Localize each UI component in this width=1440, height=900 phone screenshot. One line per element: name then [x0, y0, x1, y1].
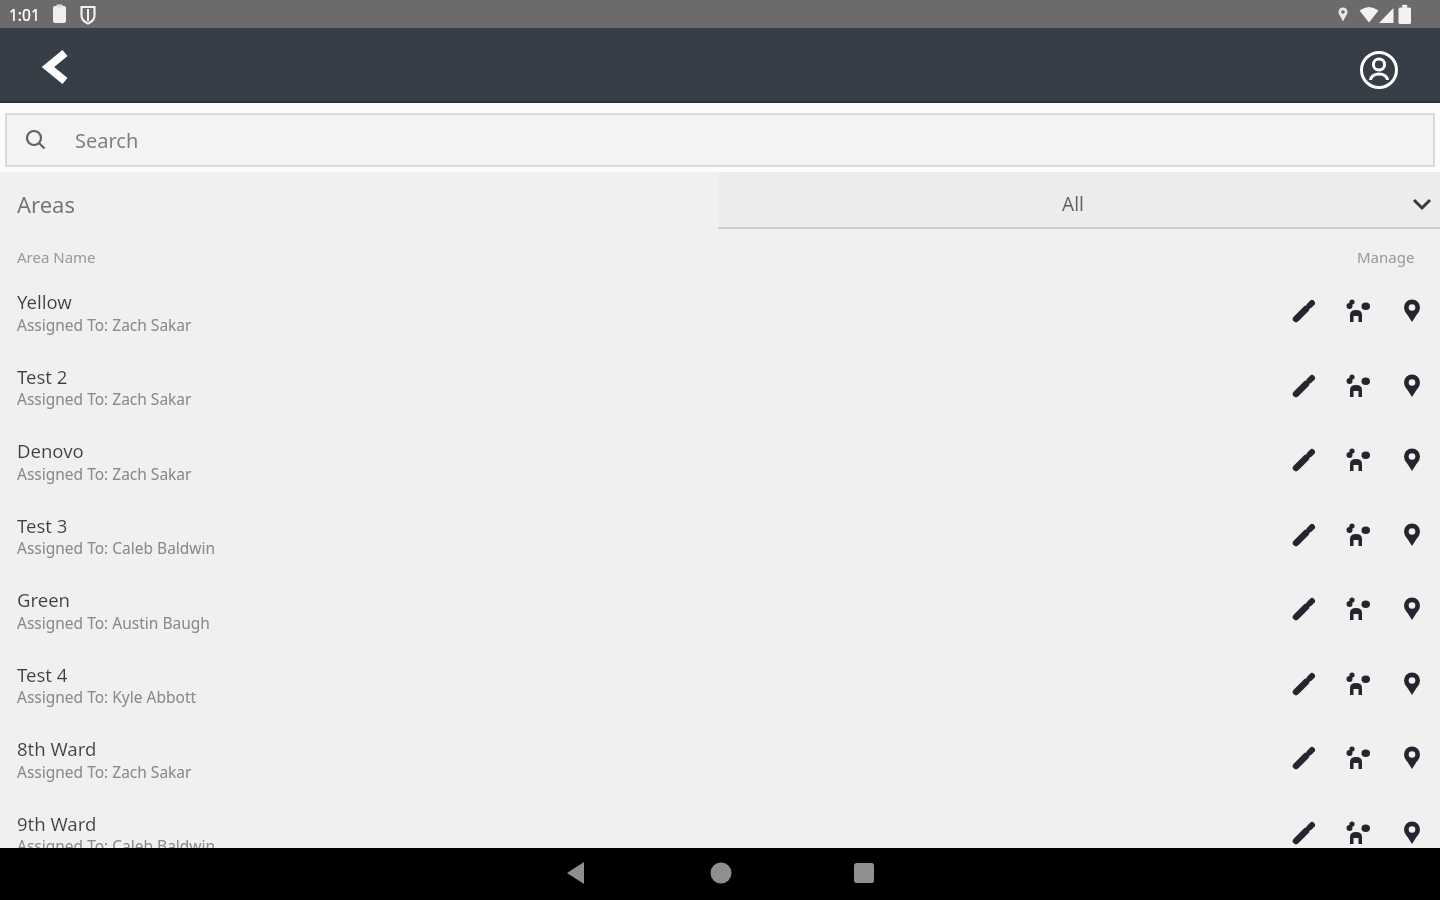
button[interactable]: [1392, 440, 1432, 480]
staticText: Test 3: [17, 513, 68, 538]
button[interactable]: [1283, 291, 1323, 331]
button[interactable]: [842, 851, 886, 895]
staticText: 1:01: [9, 4, 40, 25]
staticText: Manage: [1357, 247, 1415, 267]
button[interactable]: [1283, 589, 1323, 629]
staticText: Assigned To: Zach Sakar: [17, 463, 192, 484]
button[interactable]: [37, 47, 77, 87]
staticText: Assigned To: Austin Baugh: [17, 612, 210, 633]
button[interactable]: [1283, 440, 1323, 480]
staticText: Test 2: [17, 364, 68, 389]
button[interactable]: [1337, 664, 1377, 704]
staticText: Denovo: [17, 438, 84, 463]
button[interactable]: Manage: [1290, 237, 1415, 277]
button[interactable]: [1392, 515, 1432, 555]
button[interactable]: [1337, 366, 1377, 406]
staticText: Areas: [17, 189, 75, 219]
button[interactable]: [1392, 589, 1432, 629]
staticText: Assigned To: Zach Sakar: [17, 388, 192, 409]
button[interactable]: [1283, 366, 1323, 406]
button[interactable]: [1337, 813, 1377, 853]
button[interactable]: [1337, 291, 1377, 331]
button[interactable]: [1283, 664, 1323, 704]
button[interactable]: [1392, 738, 1432, 778]
button[interactable]: [1283, 813, 1323, 853]
staticText: Assigned To: Kyle Abbott: [17, 686, 197, 707]
staticText: 9th Ward: [17, 811, 97, 836]
button[interactable]: [1337, 589, 1377, 629]
staticText: Search: [75, 127, 139, 154]
button[interactable]: [1392, 291, 1432, 331]
button[interactable]: [5, 113, 1435, 167]
staticText: Assigned To: Zach Sakar: [17, 761, 192, 782]
staticText: Assigned To: Caleb Baldwin: [17, 835, 216, 856]
staticText: Assigned To: Zach Sakar: [17, 314, 192, 335]
staticText: 8th Ward: [17, 736, 97, 761]
staticText: All: [1062, 191, 1084, 217]
button[interactable]: [554, 851, 598, 895]
button[interactable]: [699, 851, 743, 895]
button[interactable]: [1357, 48, 1401, 92]
staticText: Green: [17, 587, 71, 612]
button[interactable]: [1392, 813, 1432, 853]
button[interactable]: [1283, 738, 1323, 778]
button[interactable]: [1392, 664, 1432, 704]
button[interactable]: [1337, 515, 1377, 555]
staticText: Assigned To: Caleb Baldwin: [17, 537, 216, 558]
staticText: Yellow: [17, 289, 72, 314]
staticText: Area Name: [17, 247, 96, 267]
button[interactable]: [1337, 738, 1377, 778]
button[interactable]: [1392, 366, 1432, 406]
staticText: Test 4: [17, 662, 68, 687]
button[interactable]: [1337, 440, 1377, 480]
button[interactable]: [718, 172, 1440, 227]
button[interactable]: [1283, 515, 1323, 555]
